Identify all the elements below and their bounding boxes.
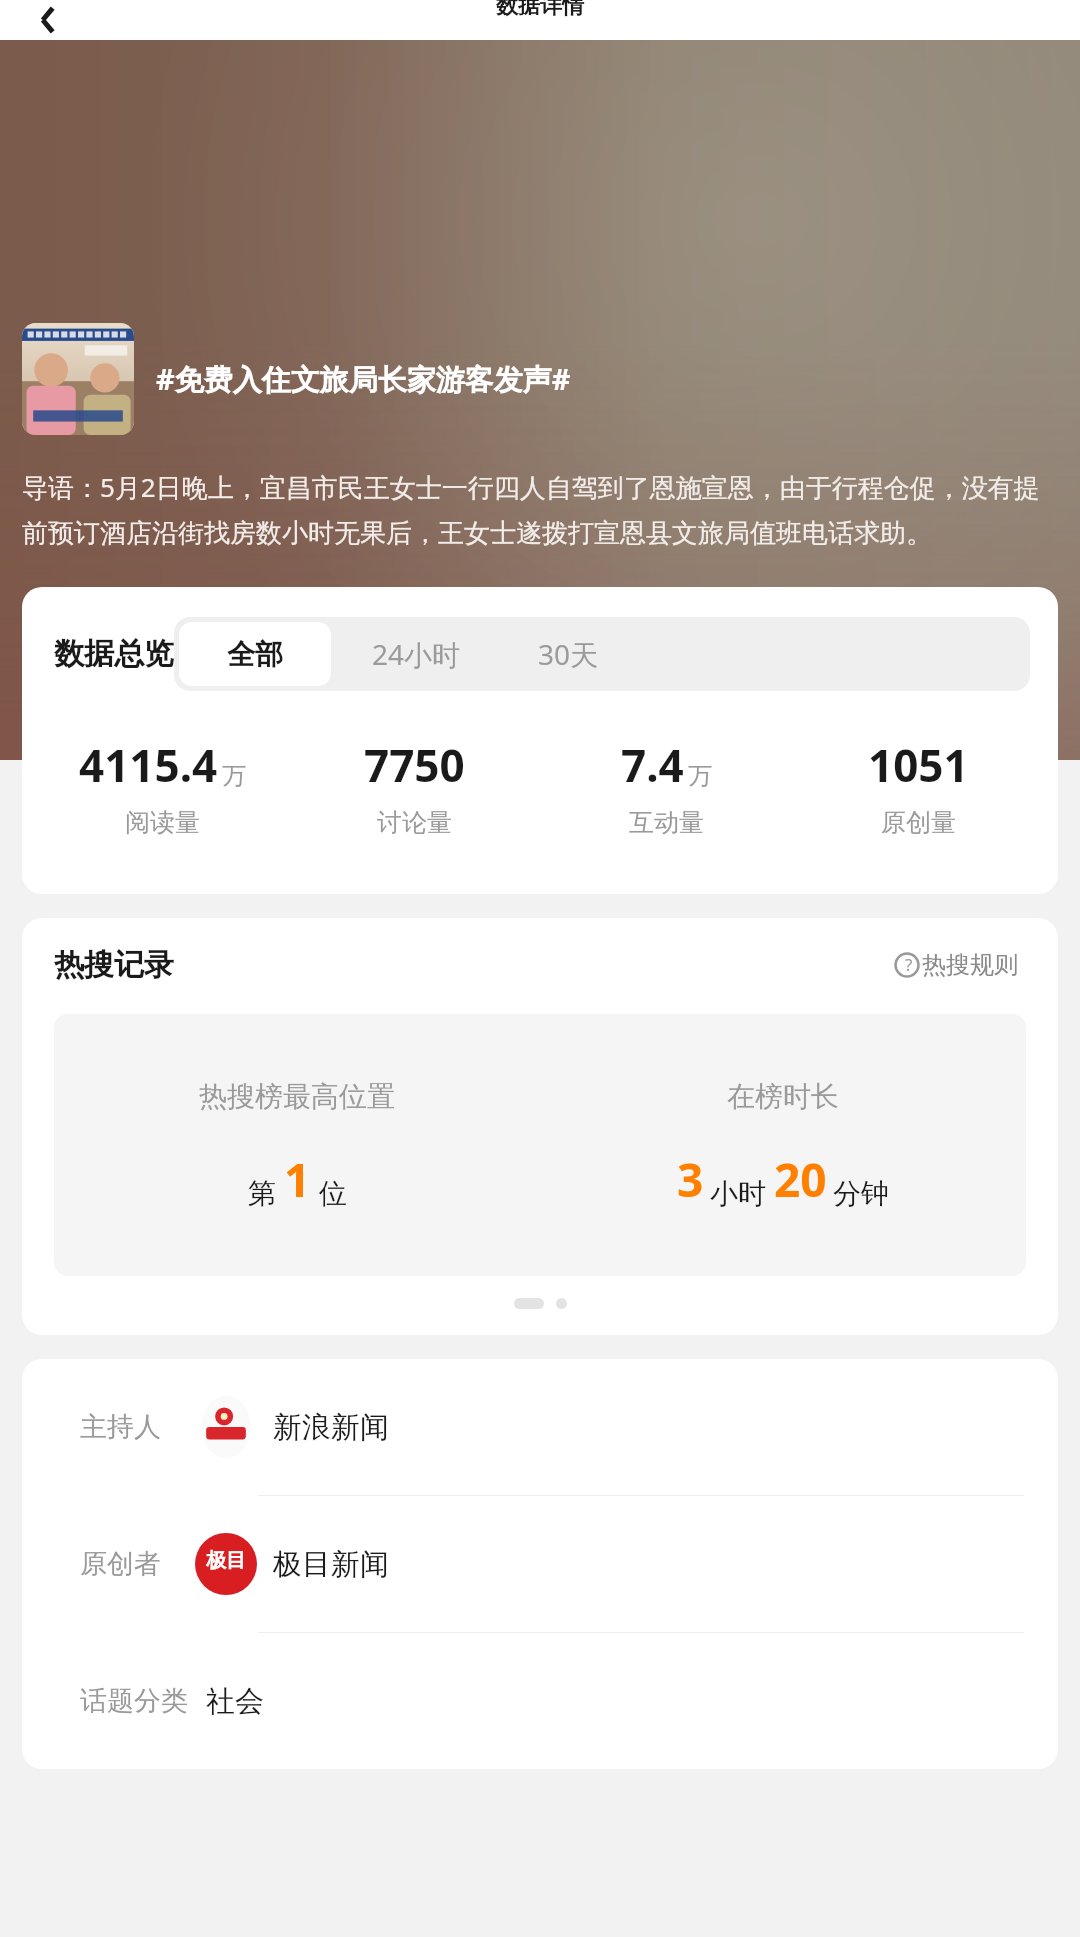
button[interactable]: ?	[894, 950, 1030, 980]
button[interactable]: 话题分类	[22, 1633, 1058, 1769]
button[interactable]: 1051	[792, 735, 1044, 838]
staticText: 热搜记录	[54, 946, 174, 984]
staticText: 万	[688, 761, 712, 791]
staticText: 新浪新闻	[273, 1409, 389, 1446]
staticText: 原创量	[881, 807, 956, 838]
staticText: 数据详情	[496, 0, 584, 20]
staticText: 小时	[710, 1176, 766, 1211]
button[interactable]: Back	[18, 0, 78, 40]
button[interactable]: 热搜榜最高位置	[54, 1014, 540, 1276]
button[interactable]: 7750	[288, 735, 540, 838]
staticText: 主持人	[80, 1410, 161, 1444]
staticText: 数据总览	[54, 635, 174, 673]
staticText: 热搜规则	[922, 950, 1018, 980]
staticText: 极目新闻	[273, 1546, 389, 1583]
button[interactable]: 主持人	[22, 1359, 1058, 1495]
staticText: 7750	[364, 735, 465, 795]
staticText: 24小时	[372, 635, 461, 673]
button[interactable]: 在榜时长	[540, 1014, 1026, 1276]
staticText: 热搜榜最高位置	[199, 1079, 395, 1114]
staticText: 原创者	[80, 1547, 161, 1581]
button[interactable]: 4115.4	[36, 735, 288, 838]
staticText: #免费入住文旅局长家游客发声#	[156, 359, 571, 399]
staticText: 分钟	[833, 1176, 889, 1211]
staticText: 社会	[206, 1683, 264, 1720]
staticText: 1051	[868, 735, 969, 795]
staticText: 在榜时长	[727, 1079, 839, 1114]
staticText: 20	[774, 1148, 827, 1211]
staticText: 第	[248, 1176, 276, 1211]
staticText: 极目	[206, 1548, 246, 1573]
staticText: 讨论量	[377, 807, 452, 838]
button[interactable]: 原创者	[22, 1496, 1058, 1632]
staticText: 1	[284, 1148, 311, 1211]
staticText: 30天	[538, 635, 599, 673]
staticText: 4115.4	[79, 735, 218, 795]
staticText: 3	[677, 1148, 704, 1211]
button[interactable]: Topic video thumbnail	[22, 323, 134, 435]
staticText: 话题分类	[80, 1684, 188, 1718]
button[interactable]: 24小时	[336, 617, 496, 691]
staticText: 导语：5月2日晚上，宜昌市民王女士一行四人自驾到了恩施宣恩，由于行程仓促，没有提…	[22, 469, 1058, 549]
staticText: ?	[905, 953, 913, 976]
staticText: 互动量	[629, 807, 704, 838]
staticText: 全部	[227, 637, 283, 672]
button[interactable]: 7.4	[540, 735, 792, 838]
staticText: 位	[319, 1176, 347, 1211]
staticText: 万	[222, 761, 246, 791]
staticText: 阅读量	[125, 807, 200, 838]
button[interactable]: 全部	[179, 622, 331, 686]
staticText: 7.4	[621, 735, 684, 795]
button[interactable]: 30天	[496, 617, 641, 691]
